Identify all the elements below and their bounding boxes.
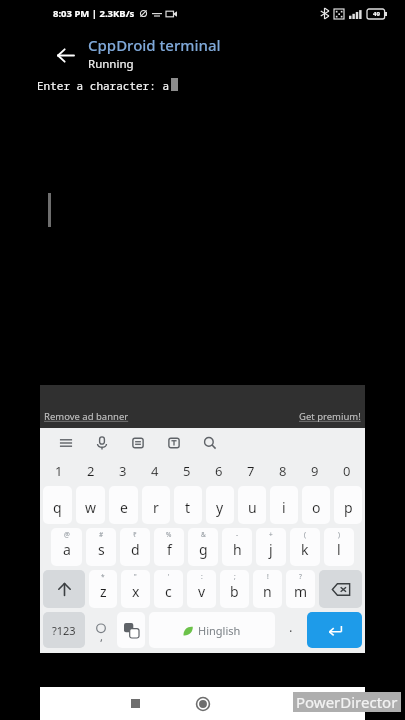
staticText: " [134,572,137,581]
staticText: o [312,498,321,517]
button[interactable]: 8 [267,458,299,484]
button[interactable]: Shift [43,570,85,608]
button[interactable]: 5 [171,458,203,484]
button[interactable]: * [89,570,117,608]
button[interactable]: 7 [235,458,267,484]
staticText: t [185,498,191,517]
staticText: & [201,530,206,539]
button[interactable]: + [256,528,286,566]
button[interactable]: Recents [119,687,152,720]
button[interactable]: e [109,486,138,524]
button[interactable]: o [302,486,330,524]
staticText: d [131,540,140,559]
button[interactable]: Home [186,687,219,720]
button[interactable]: 1 [42,458,75,484]
button[interactable]: ₹ [120,528,150,566]
button[interactable]: Voice input [92,433,112,453]
staticText: ' [168,572,170,581]
staticText: ; [234,572,236,581]
button[interactable]: Get premium! [299,410,361,423]
staticText: ?123 [52,623,76,638]
button[interactable]: : [187,570,216,608]
button[interactable]: ; [220,570,249,608]
button[interactable]: w [76,486,105,524]
button[interactable]: Back [48,38,82,72]
button[interactable]: . [279,612,303,648]
button[interactable]: ? [286,570,315,608]
staticText: a [63,540,71,559]
staticText: . [289,618,293,636]
staticText: ! [267,572,269,581]
staticText: 4 [151,462,159,480]
staticText: b [230,582,239,601]
button[interactable]: - [222,528,252,566]
button[interactable]: 2 [75,458,107,484]
staticText: y [216,498,224,517]
button[interactable]: 3 [107,458,139,484]
button[interactable]: Space [149,612,275,648]
staticText: ? [299,572,302,581]
button[interactable]: @ [51,528,82,566]
button[interactable]: Backspace [319,570,362,608]
staticText: Running [88,56,134,72]
staticText: f [167,540,172,559]
staticText: ₹ [133,530,137,539]
staticText: : [201,572,203,581]
button[interactable]: Menu [56,433,76,453]
staticText: k [301,540,309,559]
staticText: c [165,582,172,601]
staticText: h [233,540,242,559]
button[interactable]: & [188,528,218,566]
staticText: ( [304,530,306,539]
staticText: 3 [119,462,127,480]
button[interactable]: q [43,486,72,524]
staticText: 2 [87,462,95,480]
button[interactable]: ! [253,570,282,608]
staticText: 1 [55,462,63,480]
staticText: i [282,498,286,517]
staticText: r [153,498,159,517]
staticText: 7 [247,462,255,480]
staticText: Hinglish [198,623,241,638]
staticText: % [166,530,172,539]
staticText: z [100,582,107,601]
button[interactable]: ( [290,528,320,566]
button[interactable]: Translate [117,612,145,648]
button[interactable]: 0 [331,458,363,484]
button[interactable]: y [206,486,234,524]
button[interactable]: Emoji [89,612,113,648]
staticText: w [85,498,97,517]
button[interactable]: % [154,528,184,566]
button[interactable]: # [86,528,116,566]
button[interactable]: Back [330,687,363,720]
button[interactable]: u [238,486,266,524]
button[interactable]: " [121,570,150,608]
button[interactable]: Text editing [164,433,184,453]
staticText: ) [338,530,340,539]
button[interactable]: ' [154,570,183,608]
button[interactable]: 9 [299,458,331,484]
staticText: PowerDirector [296,692,398,712]
button[interactable]: ?123 [43,612,85,648]
staticText: + [269,530,273,539]
button[interactable]: t [174,486,202,524]
button[interactable]: Enter [307,612,362,648]
staticText: n [263,582,272,601]
button[interactable]: Clipboard [128,433,148,453]
staticText: 0 [343,462,351,480]
button[interactable]: Remove ad banner [44,410,129,423]
staticText: e [120,498,128,517]
button[interactable]: p [334,486,362,524]
button[interactable]: r [142,486,170,524]
button[interactable]: 4 [139,458,171,484]
button[interactable]: ) [324,528,354,566]
staticText: CppDroid terminal [88,35,221,55]
button[interactable]: i [270,486,298,524]
button[interactable]: Search [200,433,220,453]
button[interactable]: 6 [203,458,235,484]
staticText: m [294,582,308,601]
staticText: - [236,530,239,539]
staticText: x [132,582,140,601]
staticText: 5 [183,462,191,480]
staticText: Enter a character: a [37,78,169,93]
